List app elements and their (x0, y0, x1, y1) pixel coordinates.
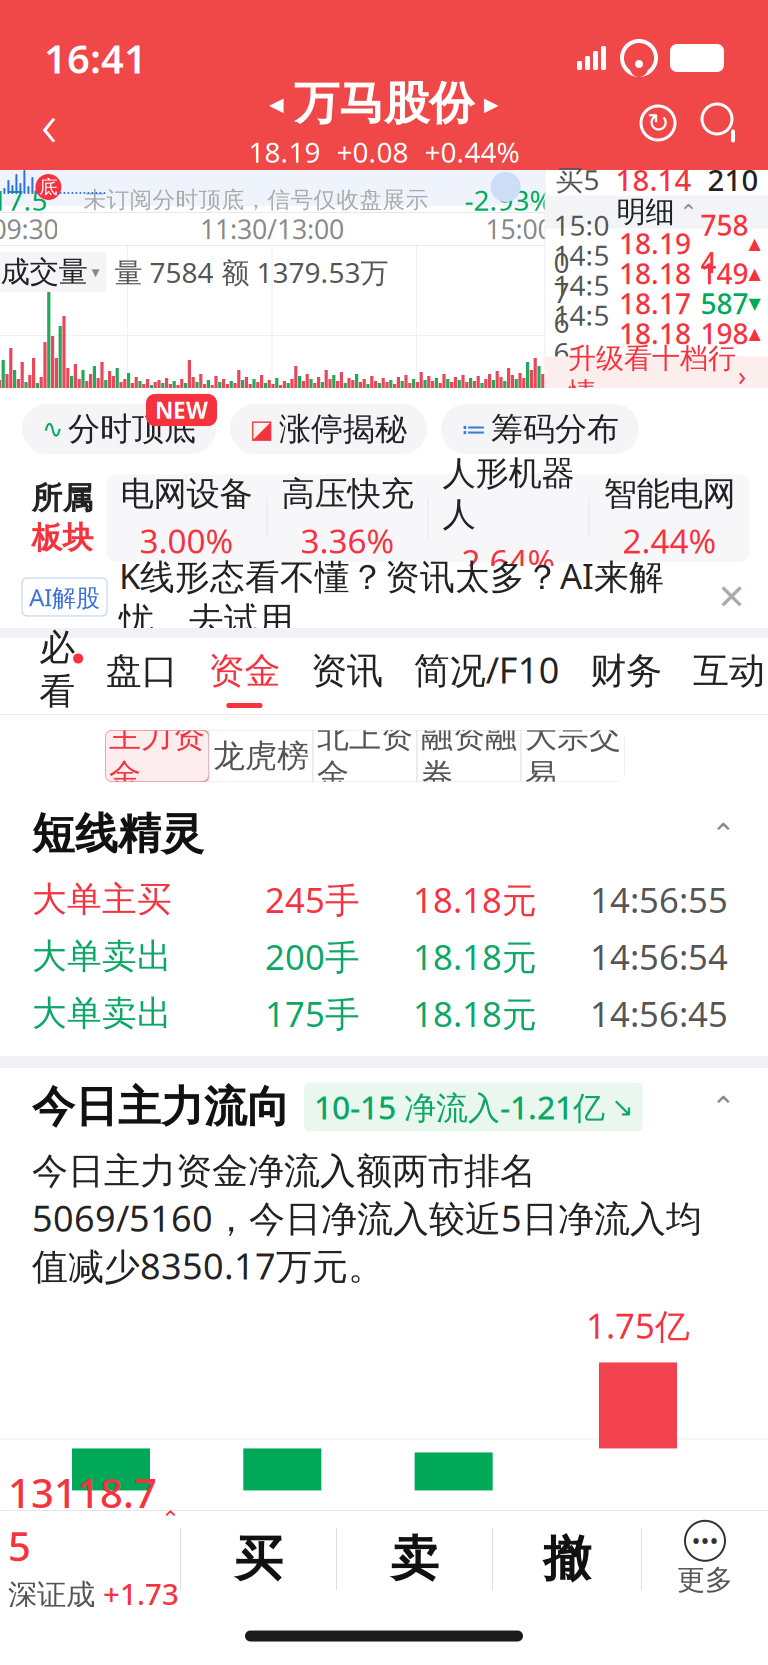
button[interactable]: 北上资金 (313, 730, 417, 782)
staticText: 量 7584 (114, 253, 213, 291)
button[interactable]: 主力资金 (105, 730, 209, 782)
staticText: 14:56:54 (590, 933, 728, 979)
staticText: ≔ (461, 415, 486, 443)
staticText: 16:41 (44, 31, 147, 84)
staticText: 17.5 (0, 181, 47, 219)
staticText: 198 (700, 315, 748, 352)
staticText: ▾ (91, 263, 99, 281)
staticText: ▲ (748, 264, 760, 283)
staticText: ◪ (250, 415, 274, 443)
staticText: 未订阅分时顶底，信号仅收盘展示 (83, 186, 428, 214)
staticText: 2.64% (461, 539, 555, 583)
staticText: ▲ (748, 324, 760, 343)
button[interactable]: 撤 (493, 1511, 641, 1607)
button[interactable]: 升级看十档行情 (545, 356, 768, 394)
staticText: 融资融券 (421, 717, 517, 795)
staticText: ••• (691, 1525, 718, 1557)
staticText: 14:56 (553, 266, 609, 341)
staticText: 18.18 (619, 255, 691, 292)
button[interactable]: 龙虎榜 (209, 730, 313, 782)
button[interactable]: 短线精灵 (0, 797, 768, 871)
button[interactable]: ◪ (230, 404, 427, 454)
staticText: 成交量 (0, 254, 87, 290)
staticText: ⌃ (711, 1090, 736, 1124)
staticText: 必看 (39, 625, 75, 714)
button[interactable]: 电网设备 (106, 473, 266, 563)
staticText: 18.18 (619, 315, 691, 352)
button[interactable]: AI解股 (0, 566, 768, 628)
staticText: +0.44% (424, 133, 519, 170)
staticText: 18.19 (619, 225, 691, 262)
button[interactable]: 高压快充 (267, 473, 427, 563)
button[interactable]: 刷新 (628, 88, 688, 158)
button[interactable]: 互动 (693, 638, 765, 714)
button[interactable]: 财务 (590, 638, 662, 714)
staticText: ⌃ (711, 817, 736, 851)
button[interactable]: 明细 (545, 195, 768, 228)
staticText: 大宗交易 (525, 717, 621, 795)
staticText: 财务 (590, 649, 662, 693)
staticText: 买5 (555, 161, 599, 198)
staticText: 200手 (265, 933, 360, 979)
staticText: 15:00 (553, 206, 609, 281)
button[interactable]: 必看 (39, 638, 75, 714)
staticText: 11:30/13:00 (200, 211, 344, 247)
button[interactable]: 大单主买 (0, 871, 768, 928)
staticText: 简况/F10 (414, 646, 560, 693)
button[interactable]: 资讯 (311, 638, 383, 714)
staticText: ⌃ (161, 1506, 180, 1532)
staticText: 今日主力资金净流入额两市排名 5069/5160，今日净流入较近5日净流入均值减… (32, 1146, 702, 1289)
staticText: 18.18元 (413, 876, 537, 922)
button[interactable]: 简况/F10 (414, 638, 560, 714)
staticText: 底 (39, 175, 58, 198)
button[interactable]: 大单卖出 (0, 928, 768, 985)
button[interactable]: 大单卖出 (0, 985, 768, 1042)
staticText: 175手 (265, 990, 360, 1036)
button[interactable]: 智能电网 (589, 473, 749, 563)
staticText: 14:56:55 (590, 876, 728, 922)
button[interactable]: 资金 (208, 638, 280, 714)
button[interactable]: 买 (181, 1511, 336, 1607)
staticText: 18.19 (248, 133, 320, 170)
staticText: 587 (700, 285, 748, 322)
staticText: 短线精灵 (32, 808, 204, 860)
button[interactable]: 大宗交易 (521, 730, 625, 782)
button[interactable]: ≔ (441, 404, 639, 454)
button[interactable]: 13118.75 (0, 1466, 180, 1652)
staticText: 额 1379.53万 (221, 253, 388, 291)
staticText: 3.36% (300, 518, 394, 563)
staticText: 互动 (693, 649, 765, 693)
button[interactable]: 搜索 (688, 88, 754, 158)
button[interactable]: ∿ (22, 404, 216, 454)
button[interactable]: 卖 (337, 1511, 492, 1607)
button[interactable]: 返回 (14, 88, 84, 158)
button[interactable]: 人形机器人 (428, 453, 588, 583)
button[interactable]: 盘口 (106, 638, 178, 714)
staticText: 板块 (31, 519, 93, 557)
staticText: ▲ (748, 234, 760, 253)
button[interactable]: 今日主力流向 (0, 1068, 768, 1146)
staticText: 13118.75 (8, 1466, 157, 1572)
staticText: 北上资金 (317, 717, 413, 795)
staticText: ▼ (748, 294, 760, 313)
staticText: +0.08 (336, 133, 408, 170)
staticText: ✕ (717, 577, 746, 617)
staticText: 14:56:45 (590, 990, 728, 1036)
staticText: 升级看十档行情 (568, 341, 736, 410)
staticText: K线形态看不懂？资讯太多？AI来解忧。去试用 (119, 553, 664, 641)
staticText: -2.93% (465, 181, 553, 219)
staticText: 大单主买 (32, 878, 172, 921)
button[interactable]: ••• (642, 1511, 768, 1607)
button[interactable]: 融资融券 (417, 730, 521, 782)
staticText: 明细 (616, 194, 674, 230)
staticText: 大单卖出 (32, 992, 172, 1035)
staticText: 深证成指 (8, 1577, 95, 1649)
staticText: 1.75亿 (586, 1302, 690, 1348)
staticText: +1.73% (103, 1574, 179, 1652)
staticText: 14:56 (553, 296, 609, 371)
staticText: ⌃ (679, 200, 697, 224)
staticText: 18.18元 (413, 933, 537, 979)
staticText: 盘口 (106, 649, 178, 693)
staticText: 09:30 (0, 211, 58, 247)
